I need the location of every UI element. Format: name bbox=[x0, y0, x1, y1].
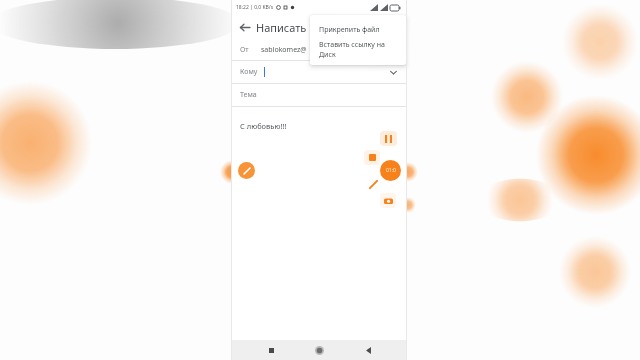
staticText: С любовью!!! bbox=[240, 121, 287, 131]
button[interactable]: Главный экран bbox=[309, 340, 329, 360]
staticText: Прикрепить файл bbox=[319, 25, 380, 35]
button[interactable]: Прикрепить файл bbox=[310, 20, 406, 40]
staticText: Вставить ссылку на Диск bbox=[319, 40, 397, 60]
button[interactable]: Редактировать bbox=[238, 162, 255, 179]
button[interactable]: Пауза bbox=[380, 131, 397, 146]
button[interactable]: Тема bbox=[232, 84, 406, 106]
staticText: 18:22 | 0.0 KB/s bbox=[236, 4, 274, 11]
staticText: 01:0 bbox=[386, 167, 396, 174]
button[interactable]: Вставить ссылку на Диск bbox=[310, 40, 406, 60]
button[interactable]: С любовью!!! bbox=[232, 107, 406, 340]
button[interactable]: От bbox=[232, 40, 406, 60]
staticText: sablokomez@ bbox=[261, 45, 307, 55]
button[interactable]: Рисовать bbox=[366, 177, 380, 191]
staticText: Написать bbox=[256, 20, 307, 35]
staticText: Тема bbox=[240, 90, 257, 100]
button[interactable]: Стоп bbox=[364, 150, 380, 165]
button[interactable]: Снимок экрана bbox=[380, 193, 396, 208]
button[interactable]: Последние приложения bbox=[261, 340, 281, 360]
button[interactable]: Назад bbox=[358, 340, 378, 360]
button[interactable]: Назад bbox=[232, 15, 256, 39]
staticText: От bbox=[240, 45, 249, 55]
button[interactable]: Запись bbox=[380, 160, 401, 181]
staticText: Кому bbox=[240, 67, 258, 77]
button[interactable]: Кому bbox=[232, 61, 406, 83]
